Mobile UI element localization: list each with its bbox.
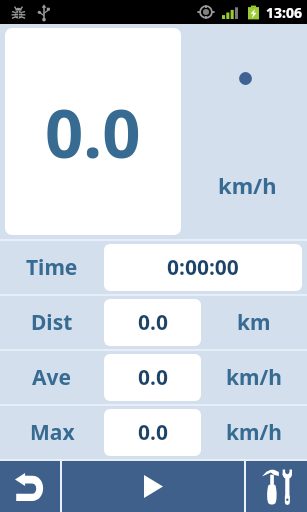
button[interactable]: Max <box>0 406 307 459</box>
staticText: 0.0 <box>45 86 141 177</box>
button[interactable]: Reset <box>0 461 60 512</box>
staticText: 0.0 <box>138 363 168 392</box>
staticText: km/h <box>226 363 282 392</box>
staticText: Max <box>30 418 75 447</box>
staticText: 0.0 <box>138 308 168 337</box>
staticText: km/h <box>226 418 282 447</box>
staticText: 0:00:00 <box>167 253 239 282</box>
staticText: 13:06 <box>266 3 302 22</box>
button[interactable]: Dist <box>0 296 307 349</box>
button[interactable]: Time <box>0 241 307 294</box>
staticText: 0.0 <box>138 418 168 447</box>
staticText: Ave <box>32 363 72 392</box>
button[interactable]: Settings <box>246 461 307 512</box>
staticText: Time <box>26 253 78 282</box>
staticText: km <box>237 308 271 337</box>
staticText: km/h <box>218 170 277 200</box>
button[interactable]: Ave <box>0 351 307 404</box>
staticText: Dist <box>31 308 73 337</box>
button[interactable]: Start <box>62 461 244 512</box>
